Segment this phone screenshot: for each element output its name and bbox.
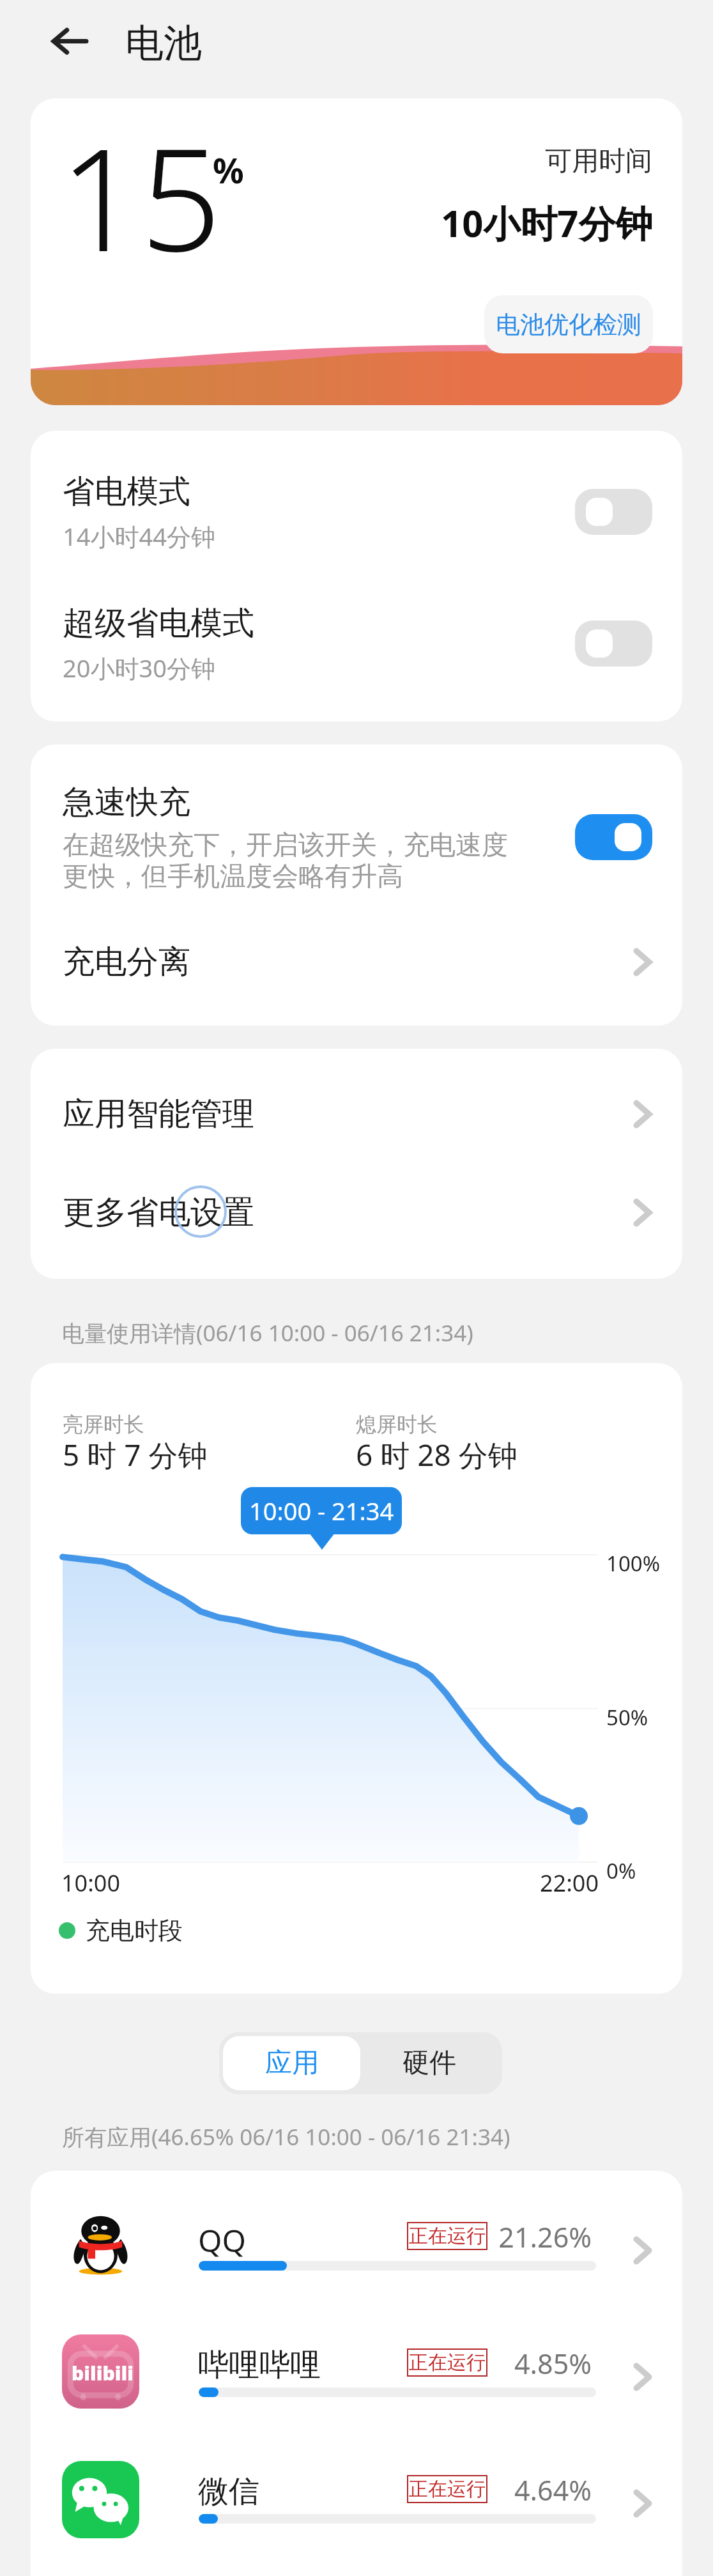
staticText: 硬件 — [402, 2046, 456, 2080]
staticText: 100% — [606, 1549, 661, 1578]
button[interactable]: 应用 — [223, 2036, 360, 2090]
button[interactable]: 省电模式 — [31, 446, 682, 578]
staticText: 6 时 28 分钟 — [356, 1435, 517, 1475]
staticText: 可用时间 — [545, 144, 652, 178]
button[interactable]: bilibili — [31, 2297, 682, 2424]
staticText: 电池优化检测 — [496, 309, 641, 340]
staticText: 正在运行 — [409, 2350, 486, 2375]
staticText: 应用 — [265, 2046, 319, 2080]
staticText: 15 — [59, 100, 222, 293]
staticText: bilibili — [72, 2360, 134, 2386]
staticText: 电池 — [125, 19, 202, 68]
button[interactable]: 急速快充 — [31, 744, 682, 930]
button[interactable]: Turn on — [575, 489, 652, 535]
staticText: 超级省电模式 — [63, 603, 254, 644]
staticText: 22:00 — [540, 1867, 599, 1899]
staticText: 0% — [606, 1856, 636, 1885]
staticText: 10:00 - 21:34 — [249, 1494, 394, 1527]
button[interactable]: 应用智能管理 — [31, 1066, 682, 1162]
button[interactable]: 微信 — [31, 2424, 682, 2550]
staticText: 亮屏时长 — [63, 1412, 144, 1437]
staticText: 正在运行 — [409, 2224, 486, 2248]
button[interactable]: 超级省电模式 — [31, 578, 682, 709]
staticText: 熄屏时长 — [356, 1412, 438, 1437]
staticText: 20小时30分钟 — [63, 651, 215, 684]
button[interactable]: 硬件 — [360, 2036, 498, 2090]
staticText: 14小时44分钟 — [63, 520, 215, 553]
staticText: 应用智能管理 — [63, 1094, 633, 1134]
staticText: QQ — [198, 2219, 246, 2261]
button[interactable]: Back — [26, 15, 92, 82]
staticText: 哔哩哔哩 — [198, 2346, 321, 2384]
button[interactable]: Turn off — [575, 814, 652, 860]
staticText: 4.64% — [477, 2471, 592, 2509]
staticText: 10小时7分钟 — [441, 197, 653, 248]
button[interactable]: 更多省电设置 — [31, 1164, 682, 1260]
button[interactable]: QQ — [31, 2171, 682, 2297]
staticText: 充电时段 — [86, 1915, 183, 1946]
staticText: 微信 — [198, 2472, 259, 2511]
staticText: 急速快充 — [63, 782, 190, 822]
button[interactable]: 充电分离 — [31, 914, 682, 1010]
staticText: 所有应用(46.65% 06/16 10:00 - 06/16 21:34) — [62, 2122, 510, 2152]
staticText: 正在运行 — [409, 2477, 486, 2501]
staticText: 在超级快充下，开启该开关，充电速度更快，但手机温度会略有升高 — [63, 829, 510, 893]
staticText: % — [213, 146, 244, 194]
staticText: 更多省电设置 — [63, 1192, 633, 1233]
button[interactable]: 电池优化检测 — [484, 295, 653, 353]
staticText: 充电分离 — [63, 942, 633, 982]
button[interactable]: 10:00 - 21:34 — [241, 1487, 402, 1534]
staticText: 4.85% — [477, 2345, 592, 2382]
button[interactable]: Turn on — [575, 621, 652, 667]
staticText: 电量使用详情(06/16 10:00 - 06/16 21:34) — [62, 1318, 473, 1348]
staticText: 5 时 7 分钟 — [63, 1435, 208, 1475]
staticText: 省电模式 — [63, 472, 190, 512]
staticText: 10:00 — [61, 1867, 121, 1899]
staticText: 50% — [606, 1703, 648, 1732]
staticText: 21.26% — [477, 2218, 592, 2256]
